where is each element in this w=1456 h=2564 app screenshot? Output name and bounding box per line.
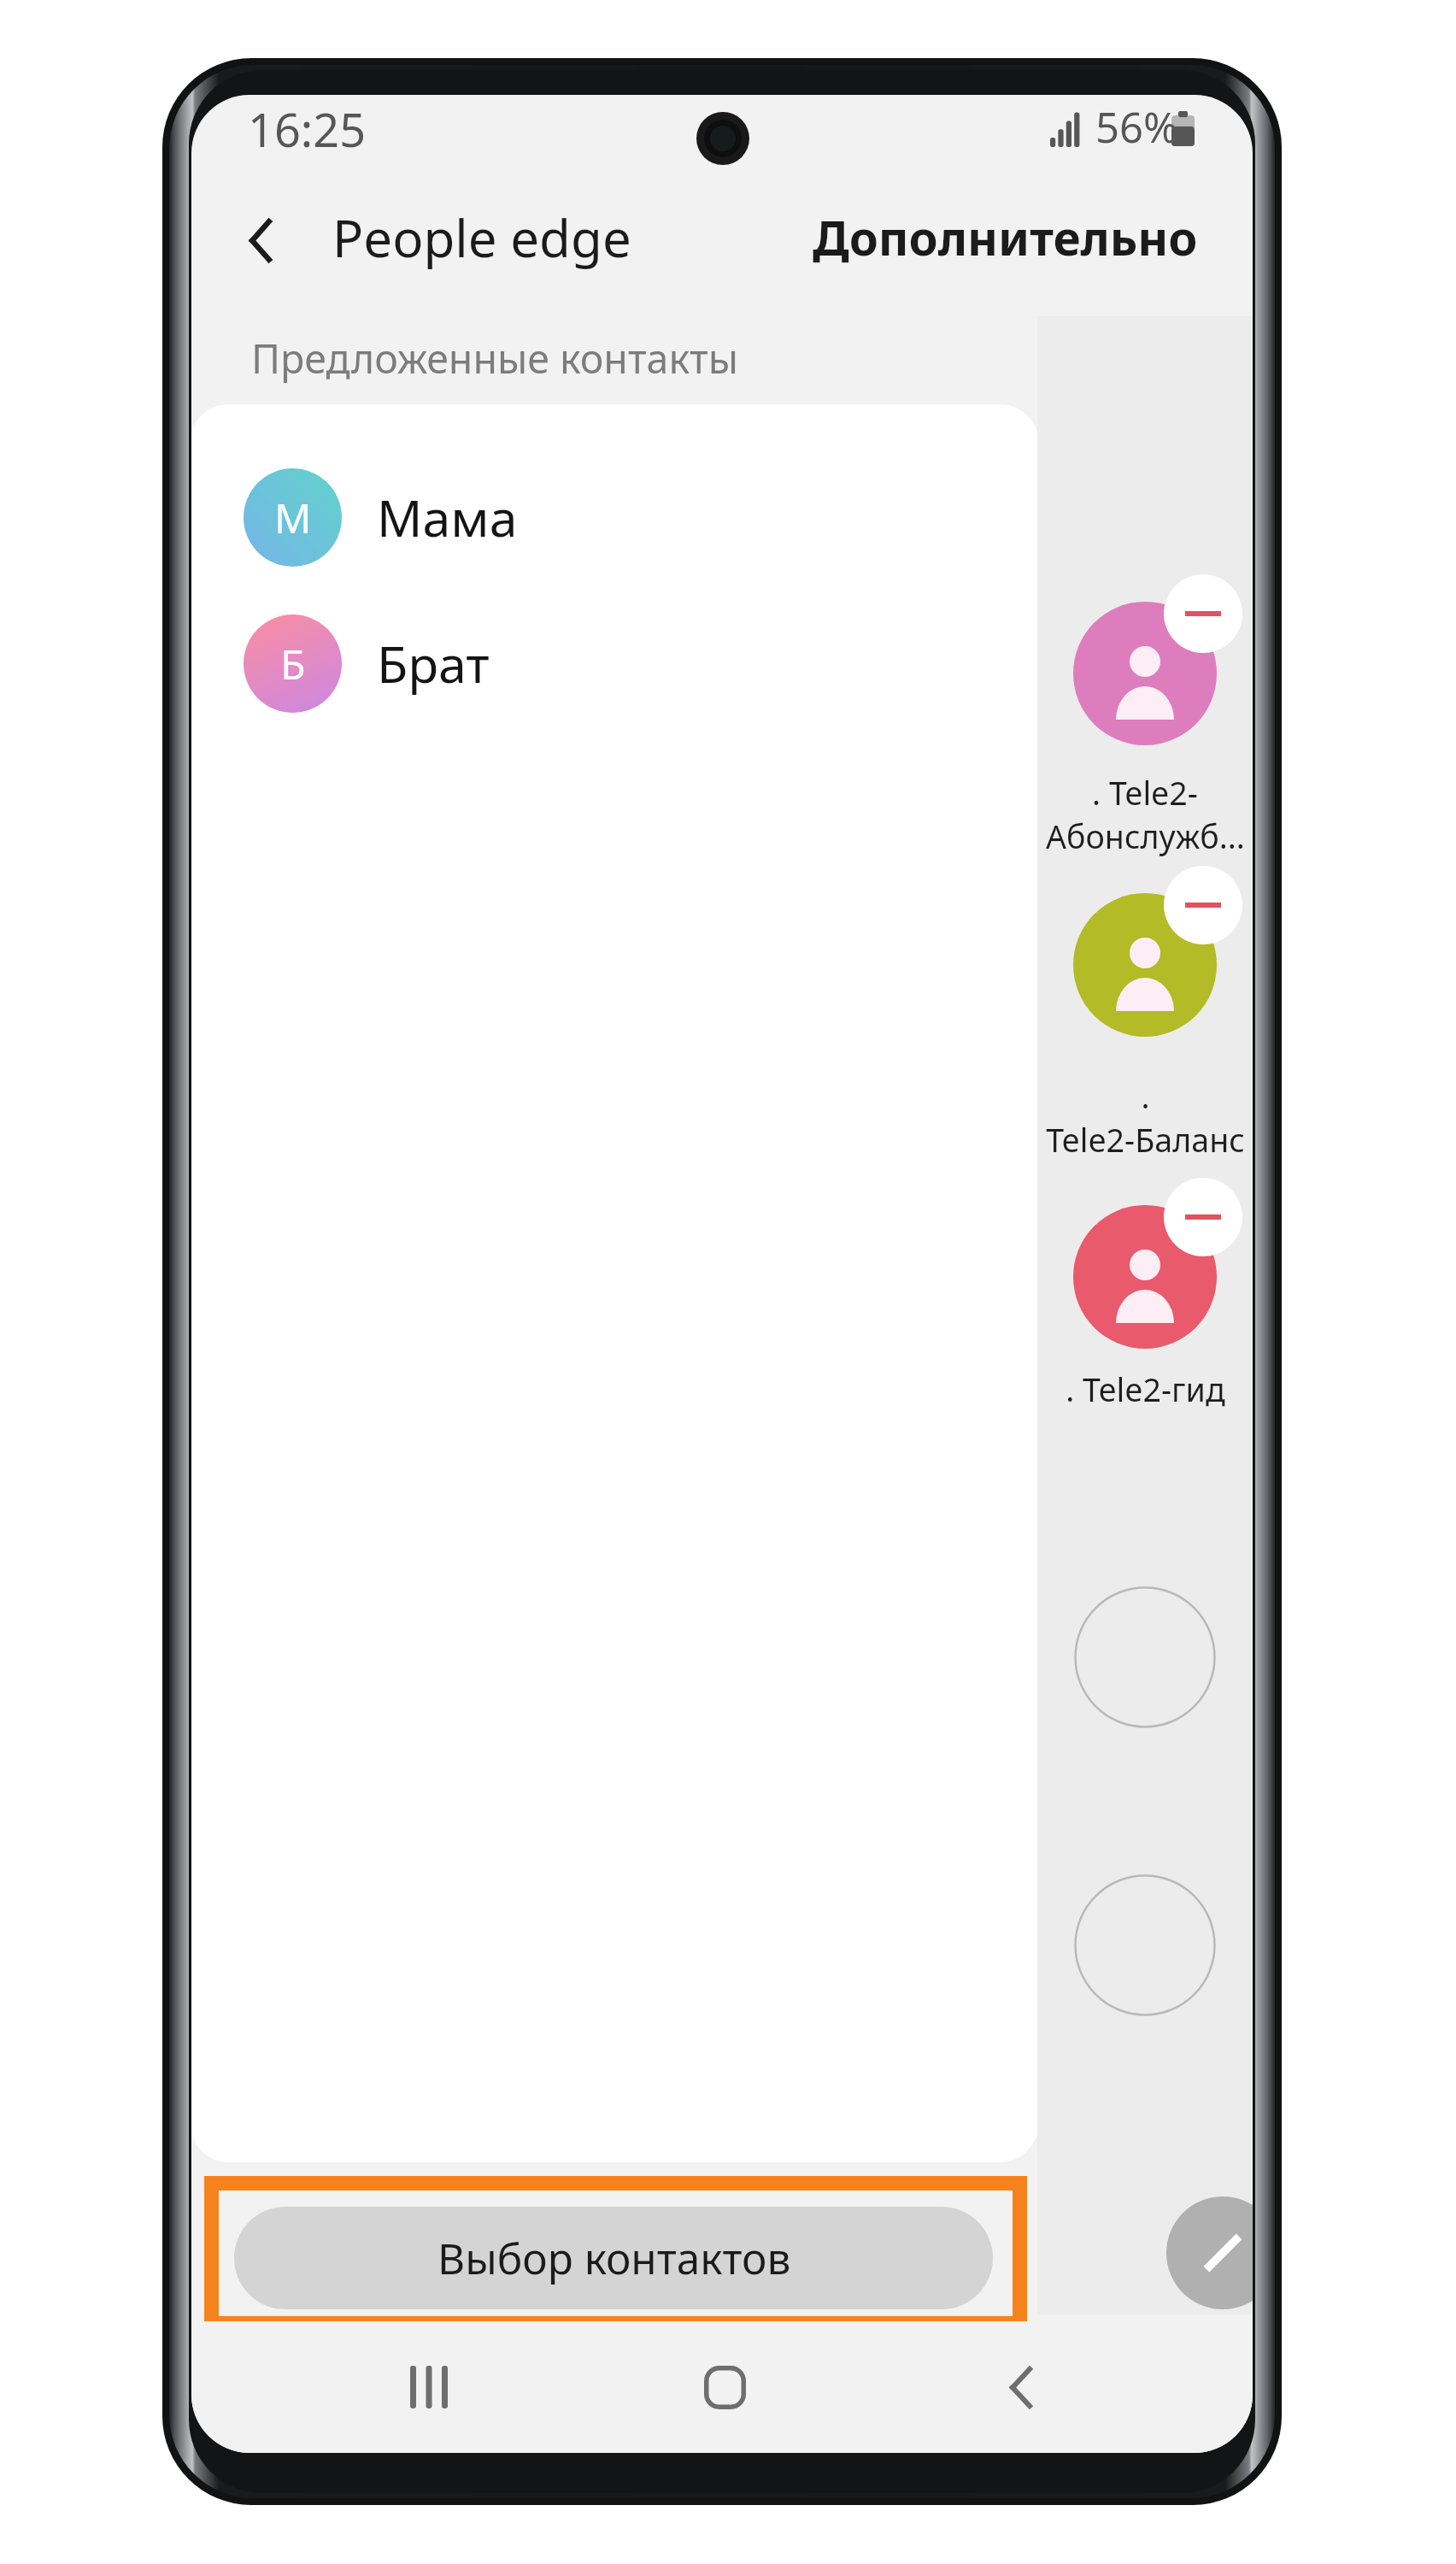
staticText: М	[274, 490, 312, 545]
button[interactable]: Back	[970, 2336, 1072, 2438]
staticText: Дополнительно	[813, 205, 1198, 269]
staticText: Tele2-Баланс	[1046, 1118, 1245, 1161]
staticText: Брат	[377, 629, 490, 697]
button[interactable]: М	[244, 453, 995, 581]
button[interactable]: Remove	[1164, 866, 1242, 944]
button[interactable]: Contact	[1073, 1205, 1217, 1349]
button[interactable]: Дополнительно	[790, 189, 1208, 291]
staticText: . Tele2-гид	[1066, 1367, 1225, 1411]
button[interactable]: Recent apps	[378, 2336, 480, 2438]
button[interactable]: Выбор контактов	[234, 2207, 993, 2309]
staticText: Выбор контактов	[437, 2229, 791, 2286]
button[interactable]: Contact	[1073, 602, 1217, 745]
button[interactable]: Remove	[1164, 574, 1242, 653]
button[interactable]: Back	[209, 189, 312, 291]
button[interactable]: Contact	[1073, 893, 1217, 1037]
staticText: Мама	[377, 483, 518, 551]
button[interactable]: Home	[673, 2336, 776, 2438]
button[interactable]: Б	[244, 599, 995, 727]
button[interactable]: Edit	[1166, 2196, 1253, 2309]
staticText: 56%	[1095, 98, 1178, 156]
button[interactable]: People edge	[328, 189, 670, 291]
staticText: People edge	[332, 203, 631, 273]
staticText: .	[1141, 1074, 1150, 1118]
button[interactable]: Remove	[1164, 1178, 1242, 1256]
staticText: 16:25	[248, 97, 367, 161]
staticText: Б	[280, 636, 306, 691]
staticText: . Tele2-	[1092, 771, 1198, 814]
staticText: Предложенные контакты	[251, 331, 738, 385]
staticText: Абонслужб...	[1046, 814, 1245, 858]
